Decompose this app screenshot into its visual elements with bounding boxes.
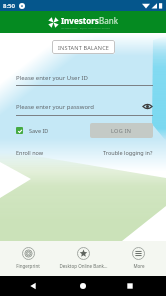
button[interactable]: Show password: [142, 101, 153, 112]
button[interactable]: Back: [22, 276, 44, 296]
staticText: Investors: [61, 15, 99, 26]
button[interactable]: Save ID: [16, 125, 49, 136]
staticText: More: [133, 263, 145, 269]
staticText: Fingerprint: [16, 263, 40, 269]
staticText: 8:50: [3, 2, 15, 10]
button[interactable]: More: [111, 247, 166, 269]
staticText: MEMBER FDIC EQUAL HOUSING LENDER: [61, 26, 110, 29]
staticText: LOG IN: [111, 127, 132, 134]
staticText: Bank: [99, 15, 118, 26]
button[interactable]: Desktop Online Bank...: [56, 247, 111, 269]
button[interactable]: Home: [72, 276, 94, 296]
staticText: INSTANT BALANCE: [58, 44, 110, 51]
button[interactable]: Enroll now: [16, 149, 44, 156]
staticText: Save ID: [29, 127, 49, 134]
staticText: Desktop Online Bank...: [59, 263, 108, 269]
button[interactable]: Fingerprint: [0, 247, 56, 269]
staticText: Please enter your User ID: [16, 74, 88, 82]
button[interactable]: INSTANT BALANCE: [52, 40, 115, 54]
button[interactable]: LOG IN: [90, 123, 153, 138]
button[interactable]: Trouble logging in?: [103, 149, 153, 156]
staticText: Please enter your password: [16, 103, 142, 111]
button[interactable]: Recent apps: [119, 276, 141, 296]
